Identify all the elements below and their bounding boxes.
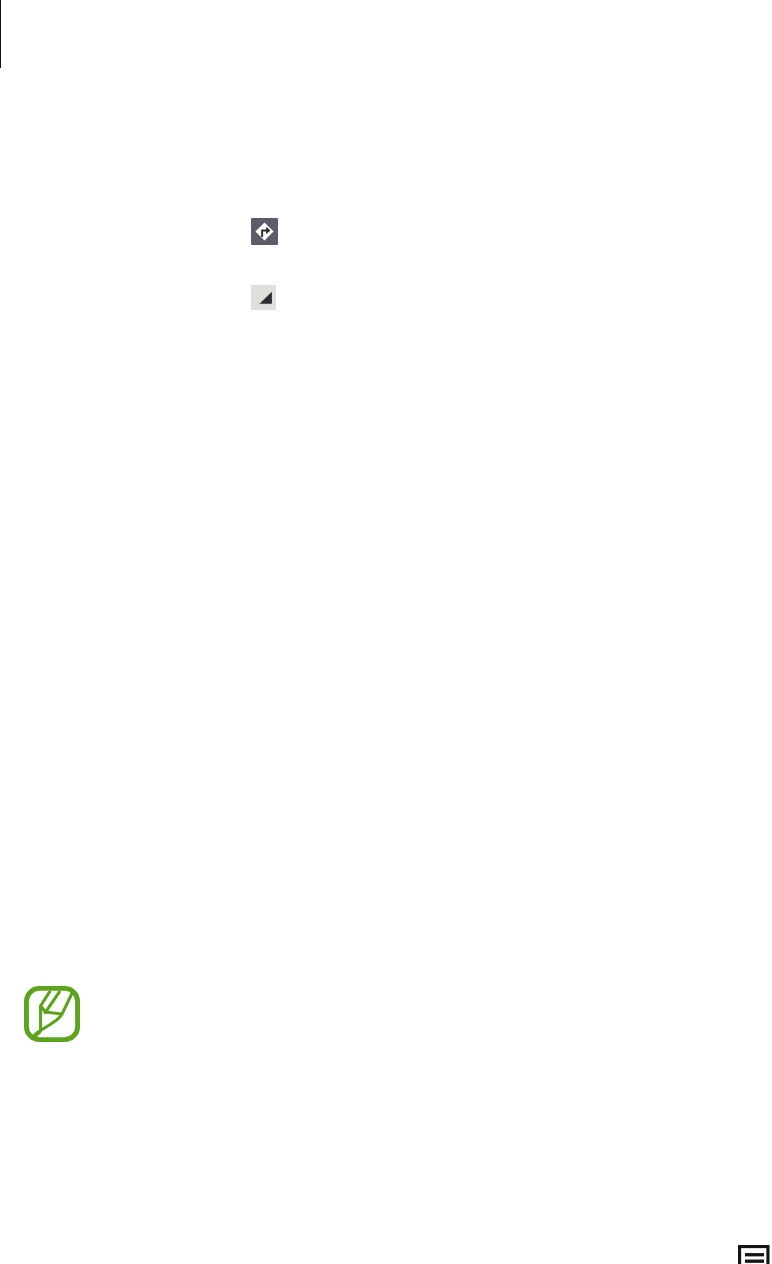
button[interactable]: Signal strength: [251, 285, 276, 310]
button[interactable]: Navigation: [251, 218, 278, 245]
button[interactable]: S Note: [24, 986, 80, 1042]
button[interactable]: Menu: [738, 1245, 771, 1264]
